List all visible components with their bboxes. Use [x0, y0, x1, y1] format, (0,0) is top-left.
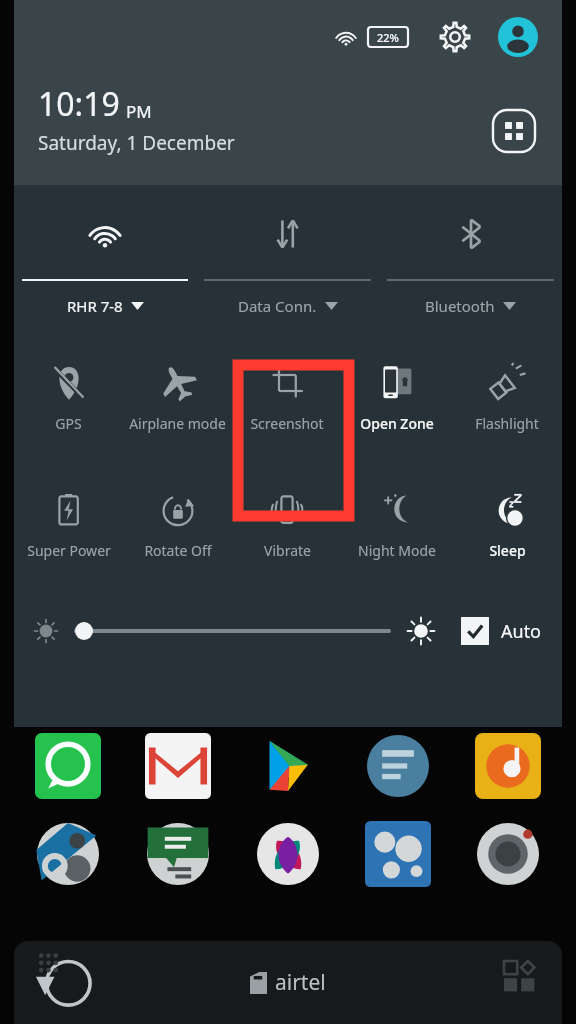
button[interactable]: App [145, 733, 211, 799]
button[interactable]: Apps [488, 105, 540, 157]
staticText: Vibrate [264, 541, 311, 560]
staticText: GPS [55, 414, 82, 433]
staticText: Data Conn. [238, 296, 317, 316]
button[interactable]: Open Zone [342, 352, 452, 457]
staticText: Bluetooth [425, 296, 495, 316]
staticText: Saturday, 1 December [38, 130, 235, 156]
button[interactable]: App [255, 733, 321, 799]
staticText: Open Zone [360, 414, 434, 433]
button[interactable]: App [475, 821, 541, 887]
button[interactable]: App [35, 733, 101, 799]
button[interactable]: App [365, 821, 431, 887]
staticText: RHR 7-8 [67, 296, 123, 316]
button[interactable]: Bluetooth [379, 185, 562, 330]
button[interactable]: Flashlight [452, 352, 562, 457]
button[interactable]: Auto [461, 617, 542, 645]
staticText: Auto [501, 619, 542, 644]
staticText: Sleep [489, 541, 526, 560]
button[interactable]: App [365, 733, 431, 799]
button[interactable]: Widgets [504, 961, 544, 1001]
staticText: 10:19 [38, 82, 120, 126]
button[interactable]: Settings [434, 16, 476, 58]
staticText: airtel [275, 968, 326, 997]
staticText: 22% [377, 30, 399, 45]
button[interactable]: GPS [14, 352, 123, 457]
button[interactable]: RHR 7-8 [14, 185, 196, 330]
button[interactable]: Night Mode [342, 479, 452, 584]
button[interactable]: App [35, 821, 101, 887]
staticText: Super Power [27, 541, 111, 560]
button[interactable]: Airplane mode [123, 352, 232, 457]
button[interactable]: App [475, 733, 541, 799]
button[interactable]: Sleep [452, 479, 562, 584]
button[interactable]: User profile [496, 15, 540, 59]
staticText: PM [126, 100, 152, 123]
button[interactable]: App [255, 821, 321, 887]
button[interactable]: Rotate Off [123, 479, 232, 584]
button[interactable]: Recents [32, 949, 98, 1015]
button[interactable]: Super Power [14, 479, 123, 584]
staticText: Flashlight [475, 414, 539, 433]
button[interactable]: Vibrate [232, 479, 342, 584]
staticText: Airplane mode [129, 414, 226, 433]
staticText: Screenshot [250, 414, 324, 433]
button[interactable]: App [145, 821, 211, 887]
button[interactable]: Data Conn. [196, 185, 379, 330]
button[interactable]: Screenshot [232, 352, 342, 457]
button[interactable]: Brightness [75, 622, 93, 640]
staticText: Rotate Off [144, 541, 212, 560]
staticText: Night Mode [358, 541, 436, 560]
